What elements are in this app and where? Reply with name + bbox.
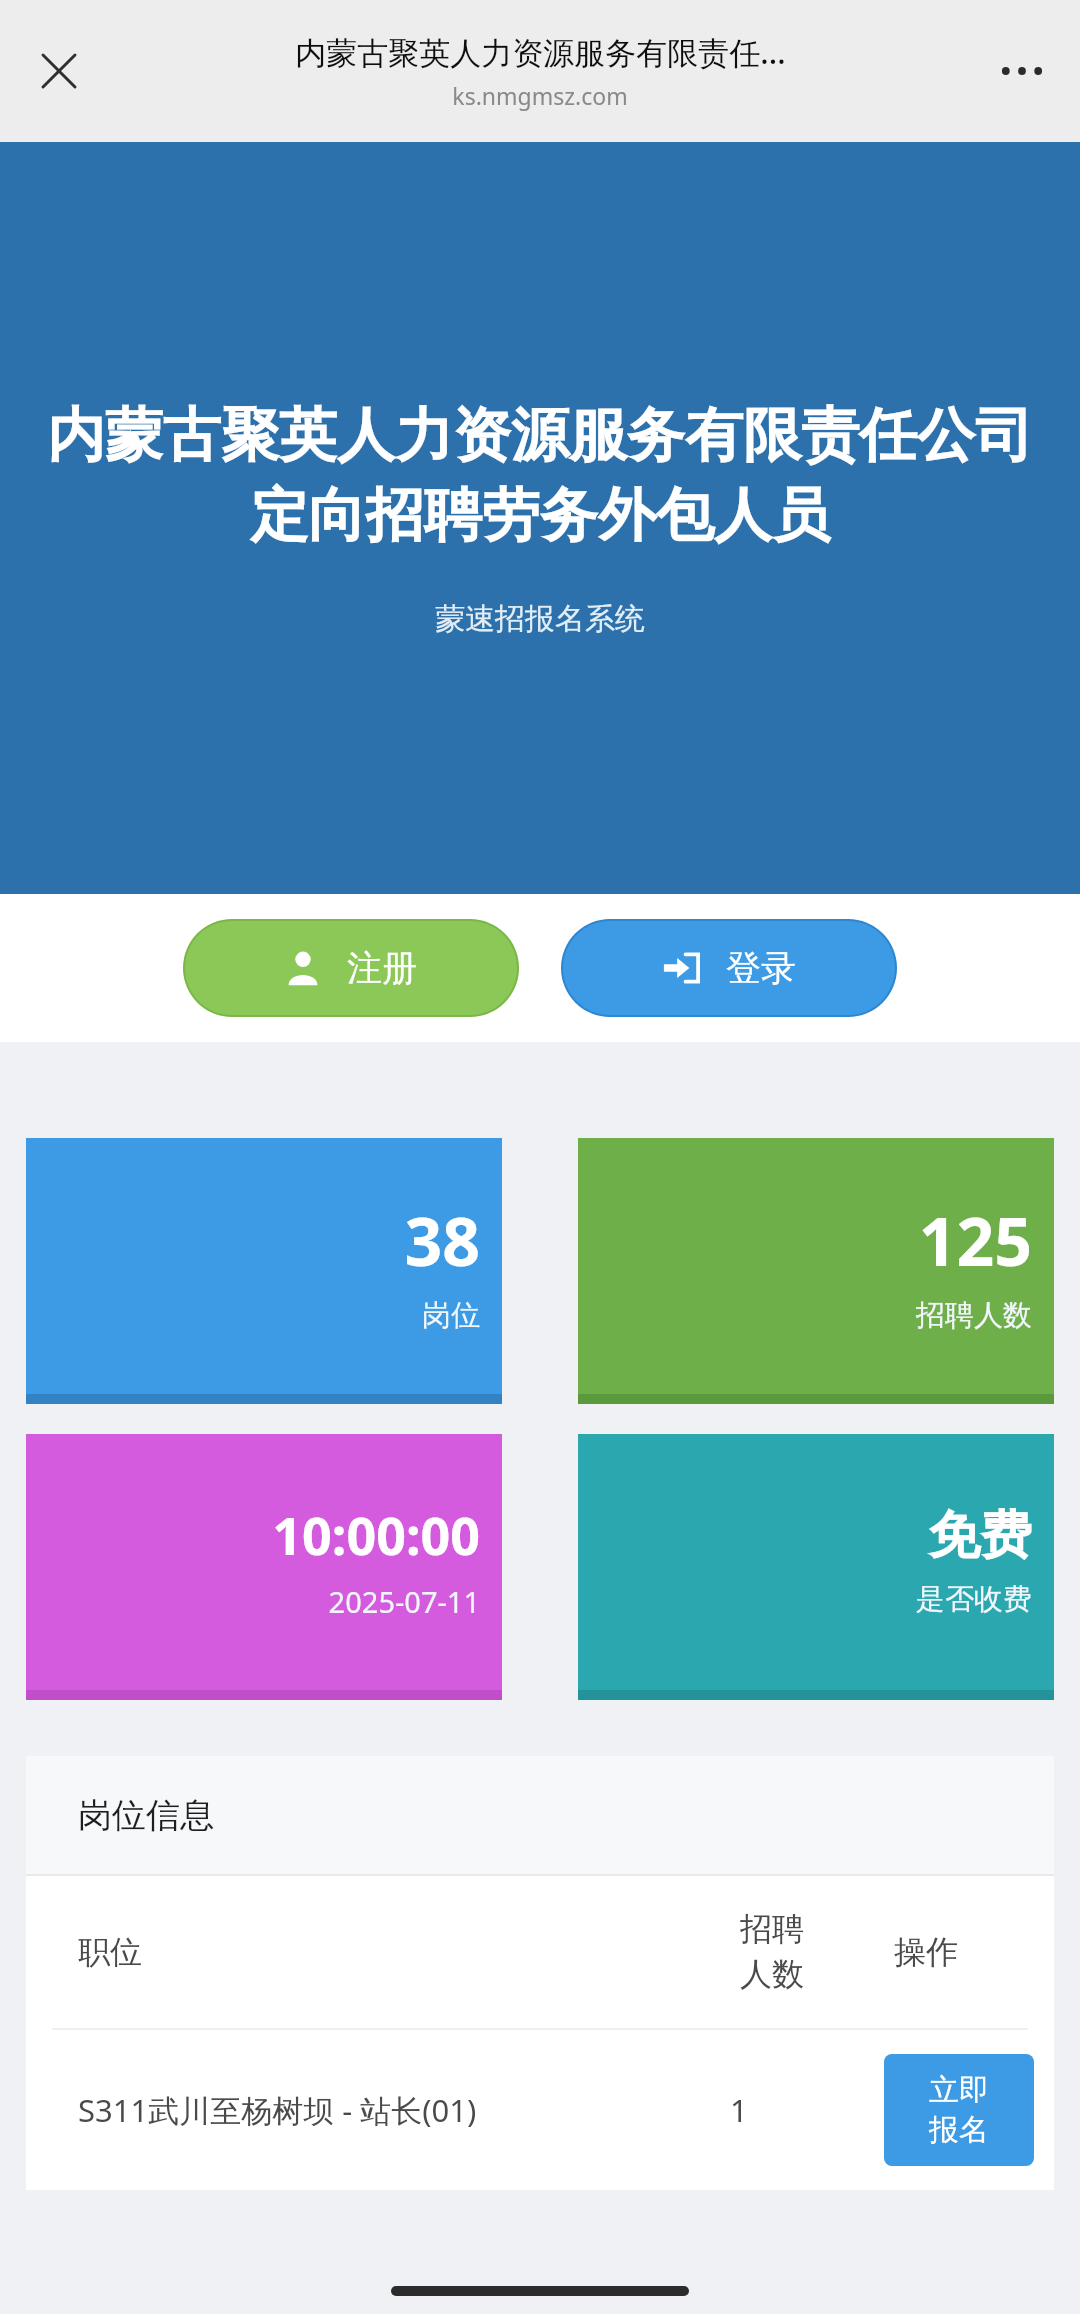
- staticText: 职位: [78, 1932, 740, 1972]
- staticText: 免费: [928, 1503, 1032, 1569]
- staticText: 登录: [726, 946, 796, 990]
- staticText: 岗位信息: [78, 1794, 214, 1837]
- button[interactable]: Close: [22, 34, 96, 108]
- staticText: 岗位: [422, 1297, 480, 1334]
- staticText: 内蒙古聚英人力资源服务有限责任公司定向招聘劳务外包人员: [46, 399, 1034, 552]
- staticText: 立即 报名: [929, 2071, 989, 2149]
- button[interactable]: S311武川至杨树坝 - 站长(01): [26, 2030, 1054, 2190]
- staticText: 2025-07-11: [328, 1582, 480, 1621]
- staticText: 1: [730, 2089, 840, 2131]
- button[interactable]: More options: [982, 31, 1062, 111]
- button[interactable]: 注册: [185, 921, 517, 1015]
- staticText: 是否收费: [916, 1581, 1032, 1618]
- button[interactable]: 登录: [563, 921, 895, 1015]
- staticText: 招聘人数: [916, 1297, 1032, 1334]
- staticText: 125: [918, 1195, 1032, 1285]
- staticText: 38: [404, 1195, 480, 1285]
- staticText: S311武川至杨树坝 - 站长(01): [78, 2089, 730, 2131]
- staticText: 招聘 人数: [740, 1909, 850, 1995]
- staticText: 蒙速招报名系统: [435, 600, 645, 638]
- button[interactable]: 38: [26, 1138, 502, 1404]
- staticText: ks.nmgmsz.com: [452, 80, 628, 111]
- staticText: 内蒙古聚英人力资源服务有限责任...: [295, 31, 786, 73]
- button[interactable]: 立即 报名: [884, 2054, 1034, 2166]
- button[interactable]: 免费: [578, 1434, 1054, 1700]
- staticText: 10:00:00: [272, 1499, 480, 1570]
- staticText: 操作: [894, 1932, 1034, 1972]
- button[interactable]: 10:00:00: [26, 1434, 502, 1700]
- button[interactable]: 125: [578, 1138, 1054, 1404]
- staticText: 注册: [347, 946, 417, 990]
